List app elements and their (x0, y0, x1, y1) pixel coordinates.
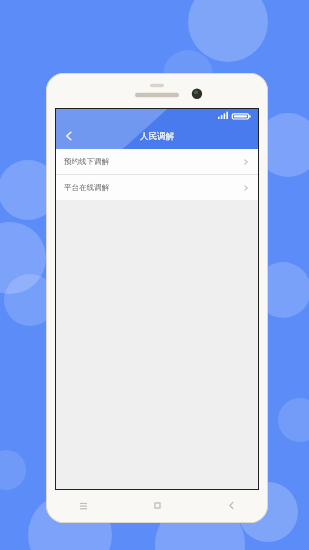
staticText: 平台在线调解 (64, 183, 109, 192)
button[interactable]: 平台在线调解 (56, 175, 258, 200)
button[interactable]: Back (56, 123, 82, 149)
button[interactable]: Home (120, 489, 194, 522)
button[interactable]: Back (194, 489, 268, 522)
staticText: 预约线下调解 (64, 157, 109, 166)
button[interactable]: 预约线下调解 (56, 149, 258, 174)
staticText: 人民调解 (140, 131, 174, 142)
button[interactable]: Menu (46, 489, 120, 522)
